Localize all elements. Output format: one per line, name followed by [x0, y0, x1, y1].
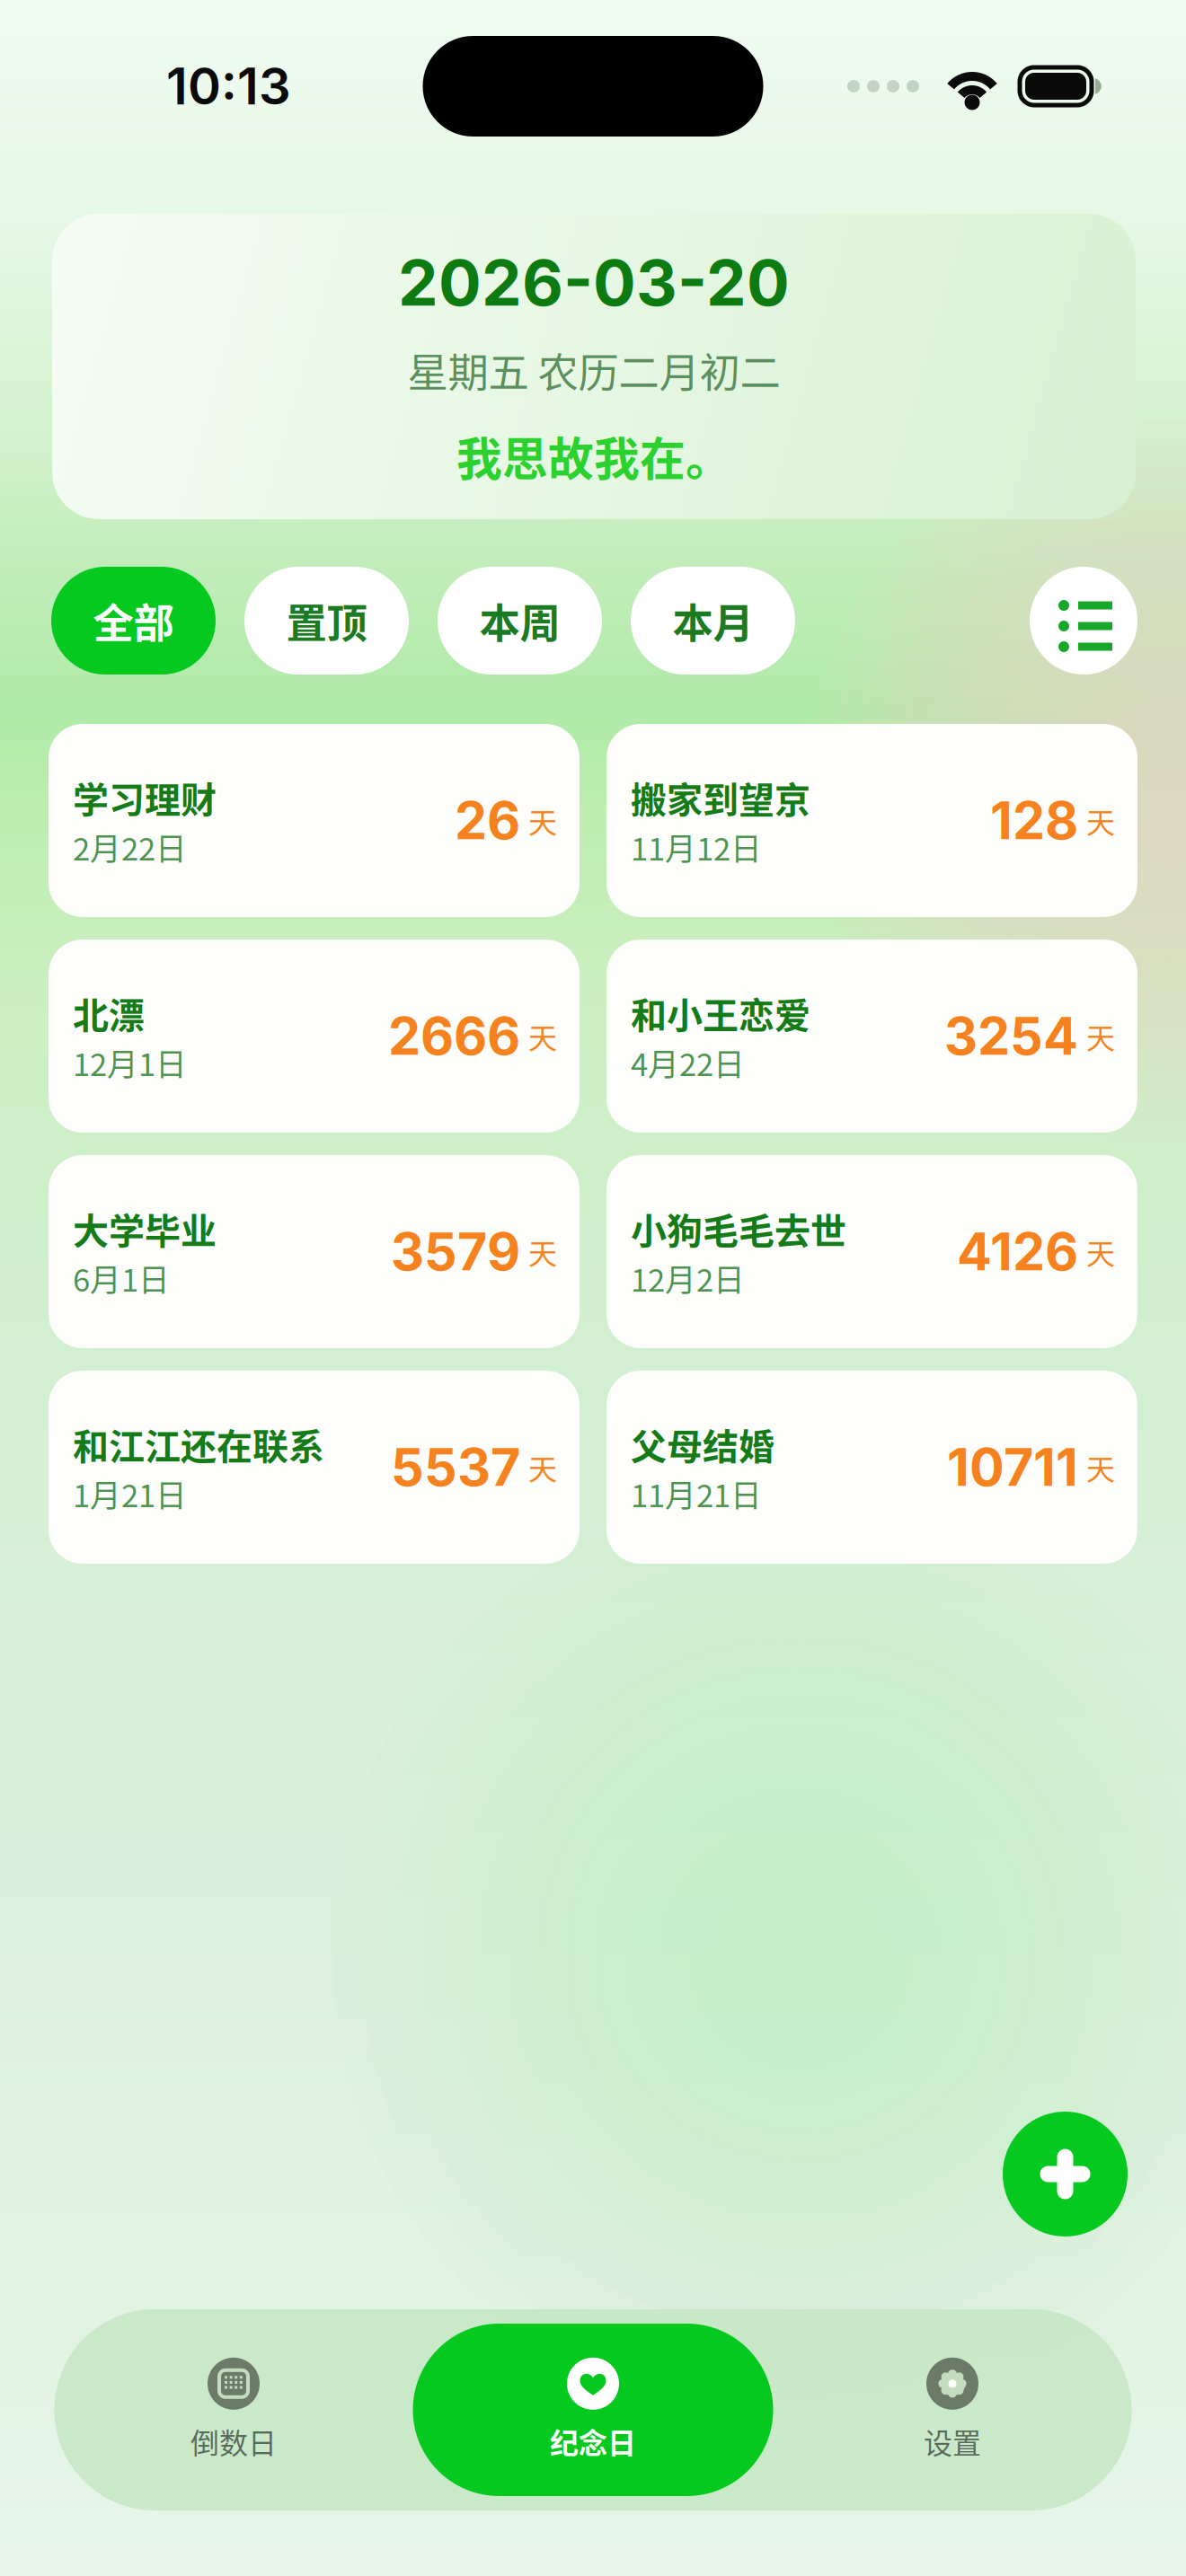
staticText: 天	[528, 1446, 557, 1488]
button[interactable]: 小狗毛毛去世	[606, 1155, 1137, 1348]
staticText: 本月	[673, 591, 753, 650]
button[interactable]: 设置	[773, 2324, 1132, 2496]
staticText: 3579	[391, 1220, 520, 1283]
button[interactable]: 父母结婚	[606, 1371, 1137, 1564]
staticText: 3254	[944, 1005, 1078, 1067]
staticText: 128	[990, 789, 1078, 852]
staticText: 10:13	[166, 56, 291, 117]
staticText: 2月22日	[73, 824, 187, 870]
staticText: 2026-03-20	[398, 244, 790, 321]
staticText: 5537	[391, 1436, 520, 1498]
staticText: 星期五 农历二月初二	[407, 341, 780, 400]
staticText: 天	[528, 1015, 557, 1057]
button[interactable]: 纪念日	[413, 2324, 773, 2496]
staticText: 纪念日	[550, 2420, 636, 2462]
staticText: 设置	[924, 2420, 981, 2462]
button[interactable]: 和小王恋爱	[606, 940, 1137, 1133]
staticText: 学习理财	[73, 771, 217, 823]
button[interactable]: 北漂	[49, 940, 580, 1133]
staticText: 搬家到望京	[631, 771, 810, 823]
staticText: 天	[528, 1231, 557, 1272]
staticText: 12月2日	[631, 1256, 745, 1301]
button[interactable]: 大学毕业	[49, 1155, 580, 1348]
staticText: 天	[1086, 800, 1115, 841]
staticText: 6月1日	[73, 1256, 170, 1301]
button[interactable]: 切换视图	[1030, 567, 1137, 675]
staticText: 置顶	[286, 591, 367, 650]
button[interactable]: 添加纪念日	[1003, 2112, 1128, 2236]
button[interactable]: 学习理财	[49, 724, 580, 917]
staticText: 和江江还在联系	[73, 1418, 324, 1470]
staticText: 12月1日	[73, 1040, 187, 1085]
button[interactable]: 置顶	[244, 567, 409, 675]
staticText: 天	[1086, 1446, 1115, 1488]
staticText: 和小王恋爱	[631, 987, 810, 1039]
staticText: 本周	[479, 591, 560, 650]
staticText: 北漂	[73, 987, 145, 1039]
staticText: 天	[528, 800, 557, 841]
staticText: 小狗毛毛去世	[631, 1203, 846, 1255]
staticText: 天	[1086, 1015, 1115, 1057]
staticText: 我思故我在。	[456, 423, 731, 489]
staticText: 倒数日	[190, 2420, 277, 2462]
button[interactable]: 本月	[631, 567, 795, 675]
button[interactable]: 本周	[438, 567, 602, 675]
staticText: 1月21日	[73, 1471, 187, 1516]
staticText: 4月22日	[631, 1040, 745, 1085]
staticText: 全部	[93, 591, 174, 650]
button[interactable]: 全部	[51, 567, 216, 675]
button[interactable]: 和江江还在联系	[49, 1371, 580, 1564]
staticText: 11月21日	[631, 1471, 762, 1516]
staticText: 天	[1086, 1231, 1115, 1272]
staticText: 父母结婚	[631, 1418, 774, 1470]
staticText: 26	[455, 789, 520, 852]
staticText: 大学毕业	[73, 1203, 217, 1255]
staticText: 11月12日	[631, 824, 762, 870]
button[interactable]: 搬家到望京	[606, 724, 1137, 917]
staticText: 10711	[947, 1436, 1078, 1498]
staticText: 4126	[957, 1220, 1078, 1283]
button[interactable]: 倒数日	[54, 2324, 413, 2496]
staticText: 2666	[388, 1005, 520, 1067]
